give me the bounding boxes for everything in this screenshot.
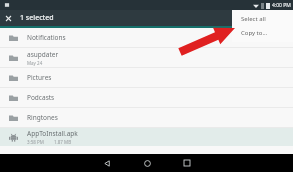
button[interactable]: Notifications [0,28,293,48]
button[interactable]: Back [87,154,127,172]
staticText: 1 selected [20,13,54,23]
button[interactable]: Ringtones [0,108,293,128]
button[interactable]: Podcasts [0,88,293,108]
staticText: Pictures [27,73,52,82]
staticText: Select all [241,15,266,23]
staticText: 4:00 PM [272,2,291,9]
button[interactable]: asupdater [0,48,293,68]
staticText: Podcasts [27,93,55,102]
staticText: 1.87 MB [54,139,72,145]
staticText: Notifications [27,33,66,42]
button[interactable]: Copy to... [232,26,293,40]
button[interactable]: Select all [232,12,293,26]
button[interactable]: Close selection [0,10,16,26]
staticText: Ringtones [27,113,58,122]
button[interactable]: Pictures [0,68,293,88]
staticText: AppToInstall.apk [27,129,78,138]
staticText: asupdater [27,50,59,59]
staticText: 3:58 PM [27,139,44,145]
staticText: May 24 [27,60,43,66]
button[interactable]: Home [127,154,167,172]
button[interactable]: Recents [167,154,207,172]
staticText: Copy to... [241,29,268,37]
button[interactable]: AppToInstall.apk [0,128,293,146]
